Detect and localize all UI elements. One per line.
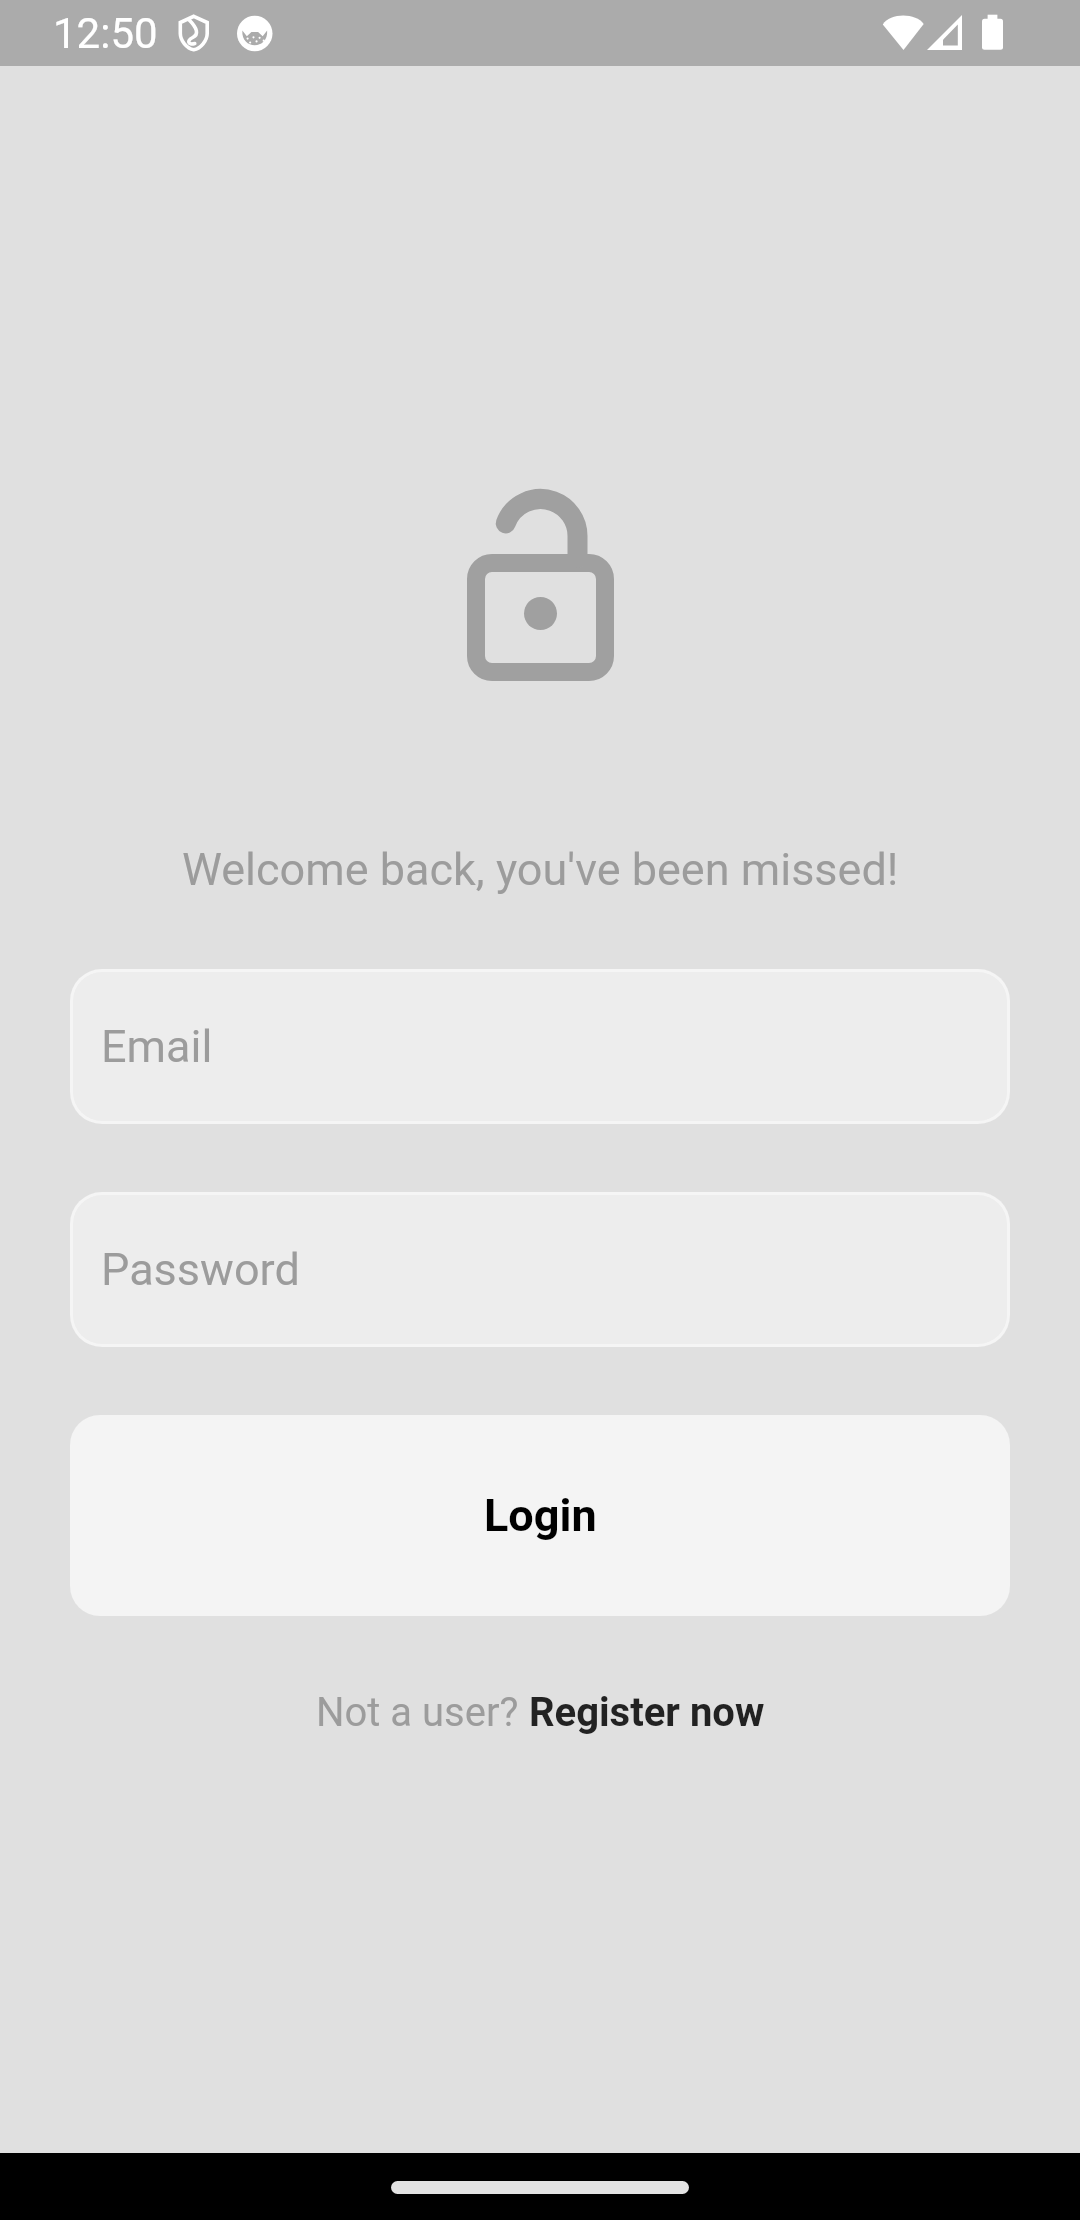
button[interactable]: Email (73, 972, 1007, 1121)
staticText: Not a user? (316, 1689, 529, 1736)
button[interactable]: Not a user? (308, 1685, 773, 1740)
other: Unlocked padlock (467, 488, 614, 681)
staticText: Password (101, 1243, 300, 1296)
staticText: Register now (529, 1689, 765, 1736)
staticText: 12:50 (53, 9, 158, 58)
staticText: Welcome back, you've been missed! (182, 843, 899, 896)
staticText: Email (101, 1020, 213, 1073)
button[interactable]: Login (70, 1415, 1010, 1616)
staticText: Login (484, 1489, 597, 1542)
button[interactable]: Password (73, 1195, 1007, 1344)
